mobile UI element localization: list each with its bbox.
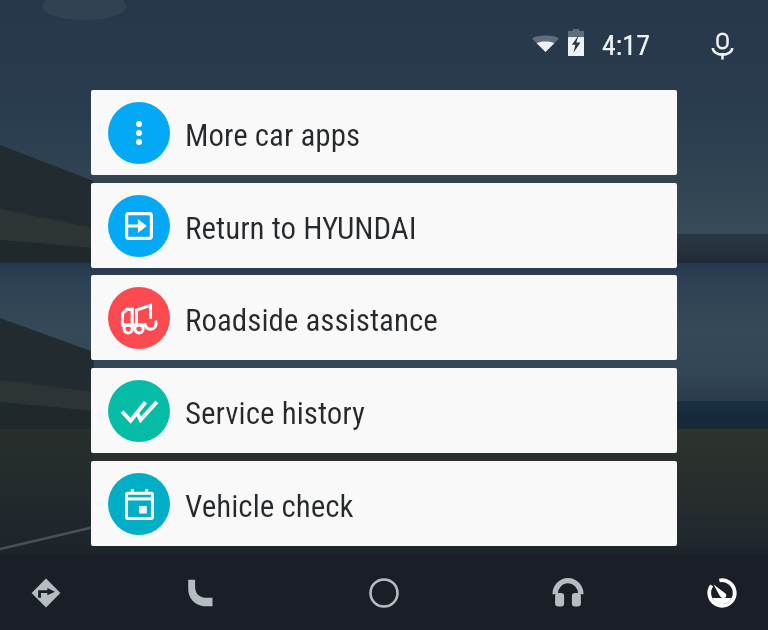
button[interactable]: Service history: [91, 368, 677, 453]
button[interactable]: Roadside assistance: [91, 275, 677, 360]
staticText: Return to HYUNDAI: [185, 210, 417, 246]
button[interactable]: Media: [530, 555, 606, 630]
staticText: Service history: [185, 395, 365, 431]
staticText: Roadside assistance: [185, 302, 438, 338]
button[interactable]: Car information: [684, 555, 760, 630]
button[interactable]: Voice search: [694, 18, 750, 74]
staticText: Vehicle check: [185, 488, 354, 524]
staticText: More car apps: [185, 117, 361, 153]
button[interactable]: Home: [346, 555, 422, 630]
staticText: 4:17: [602, 29, 651, 62]
button[interactable]: More car apps: [91, 90, 677, 175]
button[interactable]: Vehicle check: [91, 461, 677, 546]
button[interactable]: Return to HYUNDAI: [91, 183, 677, 268]
button[interactable]: Navigation: [8, 555, 84, 630]
button[interactable]: Phone: [161, 555, 237, 630]
